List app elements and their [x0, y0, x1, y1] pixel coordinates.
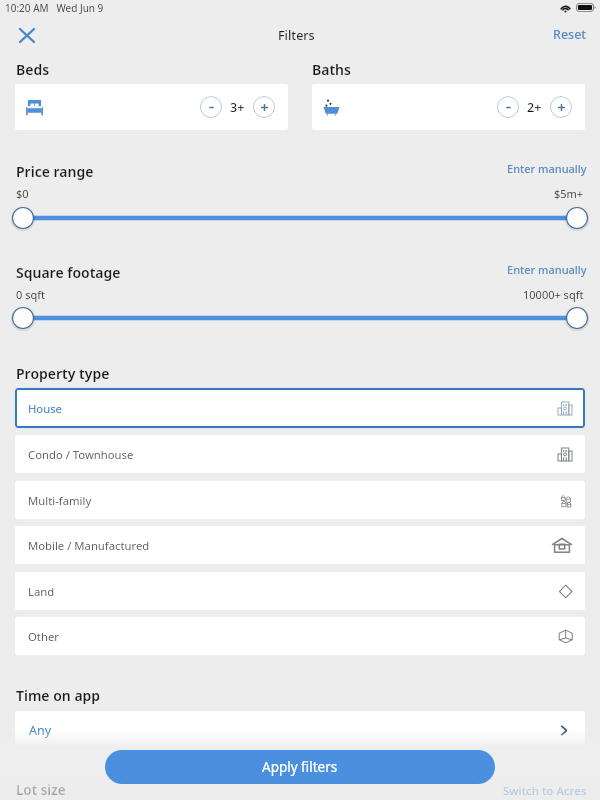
staticText: Mobile / Manufactured: [28, 538, 150, 553]
staticText: Reset: [553, 26, 587, 43]
button[interactable]: Apply filters: [105, 750, 495, 784]
button[interactable]: Enter manually: [507, 161, 587, 176]
staticText: 3+: [230, 99, 245, 116]
staticText: Land: [28, 584, 55, 599]
button[interactable]: Increase: [550, 96, 572, 118]
button[interactable]: Increase: [253, 96, 275, 118]
staticText: Filters: [278, 27, 315, 44]
button[interactable]: Multi-family: [15, 481, 585, 519]
staticText: Enter manually: [507, 262, 587, 277]
staticText: Lot size: [16, 781, 66, 799]
staticText: 0 sqft: [16, 287, 45, 302]
button[interactable]: Decrease: [200, 96, 222, 118]
staticText: $5m+: [554, 186, 584, 201]
staticText: Any: [29, 722, 52, 739]
button[interactable]: Other: [15, 617, 585, 655]
staticText: Condo / Townhouse: [28, 447, 134, 462]
staticText: $0: [16, 186, 29, 201]
staticText: Switch to Acres: [503, 783, 587, 799]
staticText: Enter manually: [507, 161, 587, 176]
button[interactable]: Any: [15, 711, 585, 749]
button[interactable]: Switch to Acres: [503, 783, 587, 799]
staticText: Square footage: [16, 263, 121, 282]
button[interactable]: Reset: [553, 26, 587, 43]
button[interactable]: House: [15, 388, 585, 428]
staticText: Beds: [16, 60, 50, 79]
button[interactable]: Land: [15, 572, 585, 610]
staticText: Time on app: [16, 686, 101, 705]
button[interactable]: Decrease: [497, 96, 519, 118]
button[interactable]: Mobile / Manufactured: [15, 526, 585, 564]
staticText: Multi-family: [28, 493, 92, 508]
staticText: Other: [28, 629, 59, 644]
button[interactable]: Close: [12, 20, 42, 50]
button[interactable]: Condo / Townhouse: [15, 435, 585, 473]
staticText: 10000+ sqft: [523, 287, 584, 302]
staticText: House: [28, 401, 62, 416]
staticText: Property type: [16, 364, 110, 383]
staticText: 2+: [527, 99, 542, 116]
staticText: Baths: [312, 60, 351, 79]
staticText: 10:20 AM Wed Jun 9: [5, 1, 104, 15]
staticText: Price range: [16, 162, 94, 181]
staticText: Apply filters: [262, 758, 338, 776]
button[interactable]: Enter manually: [507, 262, 587, 277]
